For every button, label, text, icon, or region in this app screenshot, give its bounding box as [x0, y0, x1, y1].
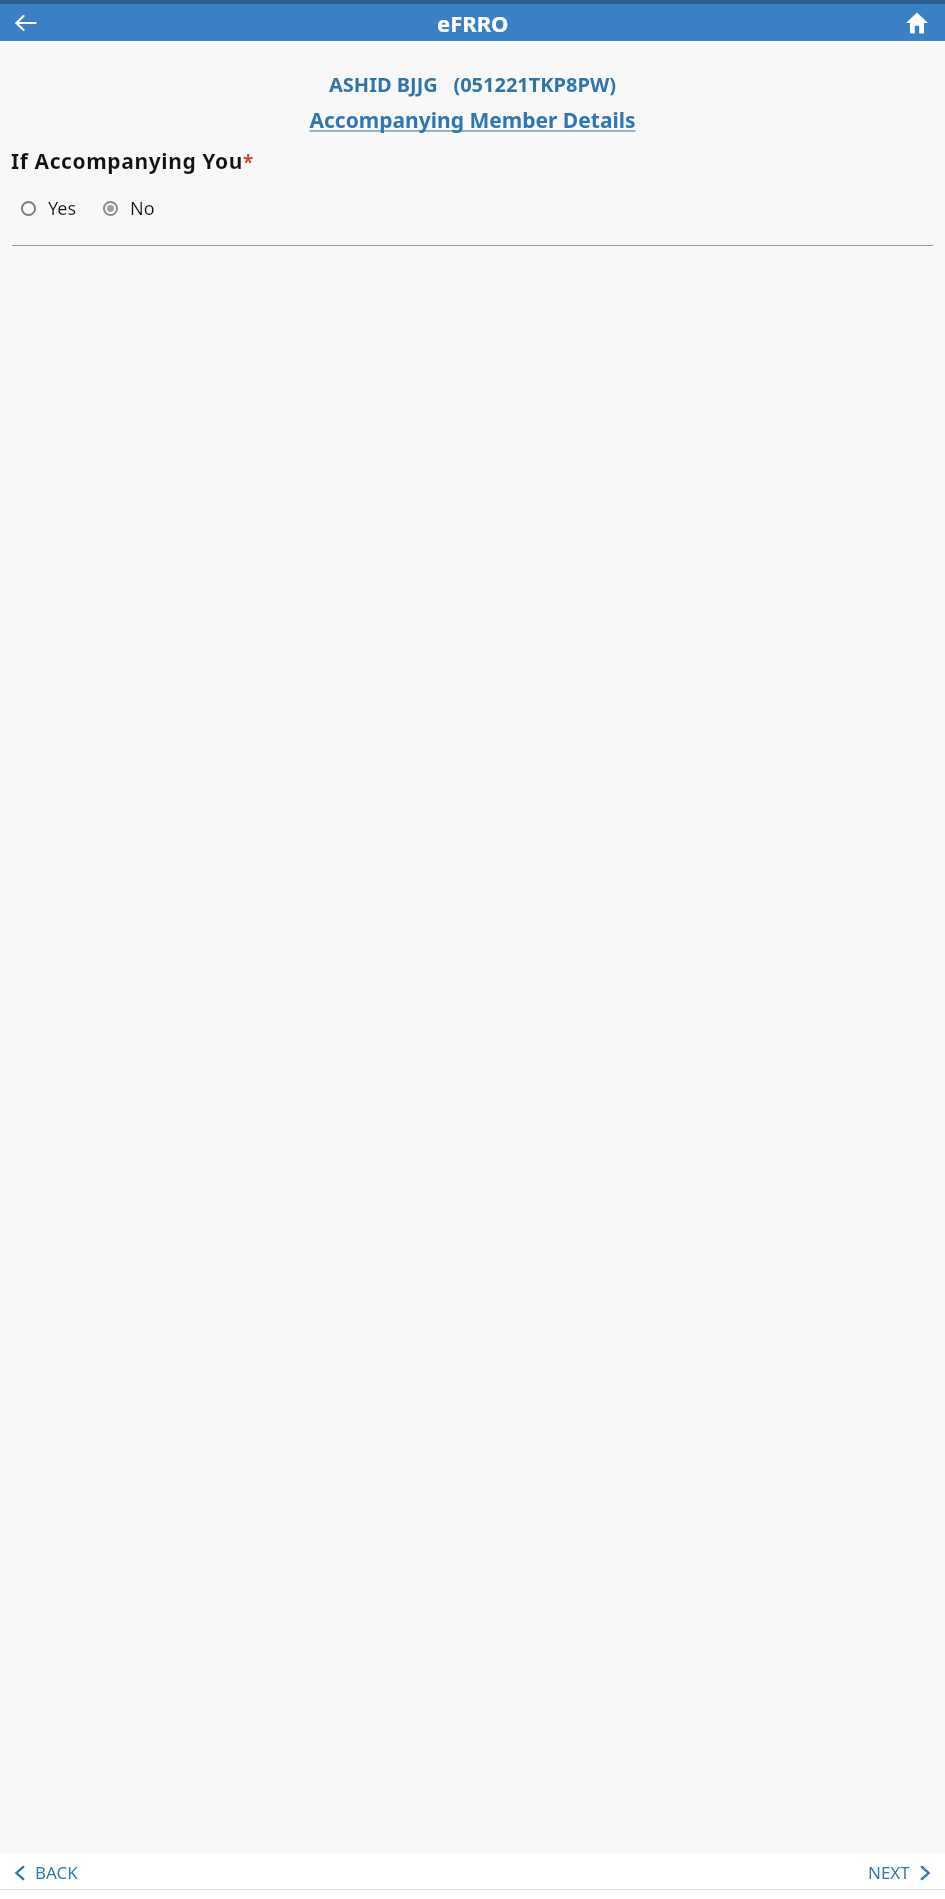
button[interactable]: Home [897, 4, 937, 41]
staticText: NEXT [868, 1861, 910, 1884]
staticText: If Accompanying You [11, 147, 243, 176]
button[interactable]: No [101, 193, 157, 224]
staticText: Yes [48, 196, 77, 221]
staticText: eFRRO [437, 8, 509, 38]
button[interactable]: Back [6, 4, 46, 41]
staticText: * [243, 149, 254, 175]
staticText: BACK [35, 1861, 78, 1884]
button[interactable]: Accompanying Member Details [309, 106, 636, 135]
button[interactable]: Yes [19, 193, 79, 224]
staticText: ASHID BJJG (051221TKP8PW) [0, 71, 945, 98]
button[interactable]: BACK [9, 1857, 80, 1888]
staticText: No [130, 196, 155, 221]
button[interactable]: NEXT [866, 1857, 936, 1888]
